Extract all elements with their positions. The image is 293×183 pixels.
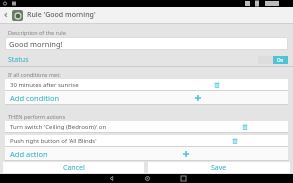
button[interactable]: Delete (212, 80, 221, 89)
button[interactable]: Home (140, 174, 154, 183)
button[interactable]: Delete (230, 136, 239, 145)
staticText: Description of the rule (8, 29, 66, 36)
button[interactable]: Up (0, 7, 12, 23)
button[interactable]: Delete (240, 122, 249, 131)
button[interactable]: Good morning! (5, 37, 288, 50)
staticText: Status (8, 55, 29, 65)
staticText: If all conditions met: (8, 71, 61, 78)
button[interactable]: Add condition (5, 91, 288, 104)
staticText: Cancel (63, 163, 85, 173)
button[interactable]: Save (148, 162, 290, 173)
staticText: 30 minutes after sunrise (10, 81, 79, 89)
staticText: On (277, 57, 284, 63)
button[interactable]: Add action (5, 147, 288, 160)
staticText: Add action (10, 149, 48, 159)
staticText: THEN perform actions (8, 113, 66, 120)
button[interactable]: Add (181, 149, 190, 158)
staticText: Save (211, 163, 227, 173)
button[interactable]: Add (193, 93, 202, 102)
button[interactable]: 30 minutes after sunrise (5, 79, 288, 90)
staticText: Turn switch 'Ceiling (Bedroom)' on (10, 123, 107, 131)
staticText: Good morning! (9, 39, 63, 49)
staticText: Rule 'Good morning' (27, 10, 96, 20)
button[interactable]: Back (104, 174, 118, 183)
staticText: Add condition (10, 93, 60, 103)
button[interactable]: Turn switch 'Ceiling (Bedroom)' on (5, 121, 288, 132)
staticText: Push right button of 'All Blinds' (10, 137, 97, 145)
button[interactable]: Cancel (3, 162, 144, 173)
button[interactable]: Recents (176, 174, 190, 183)
button[interactable]: Enabled (258, 56, 288, 64)
button[interactable]: Push right button of 'All Blinds' (5, 135, 288, 146)
